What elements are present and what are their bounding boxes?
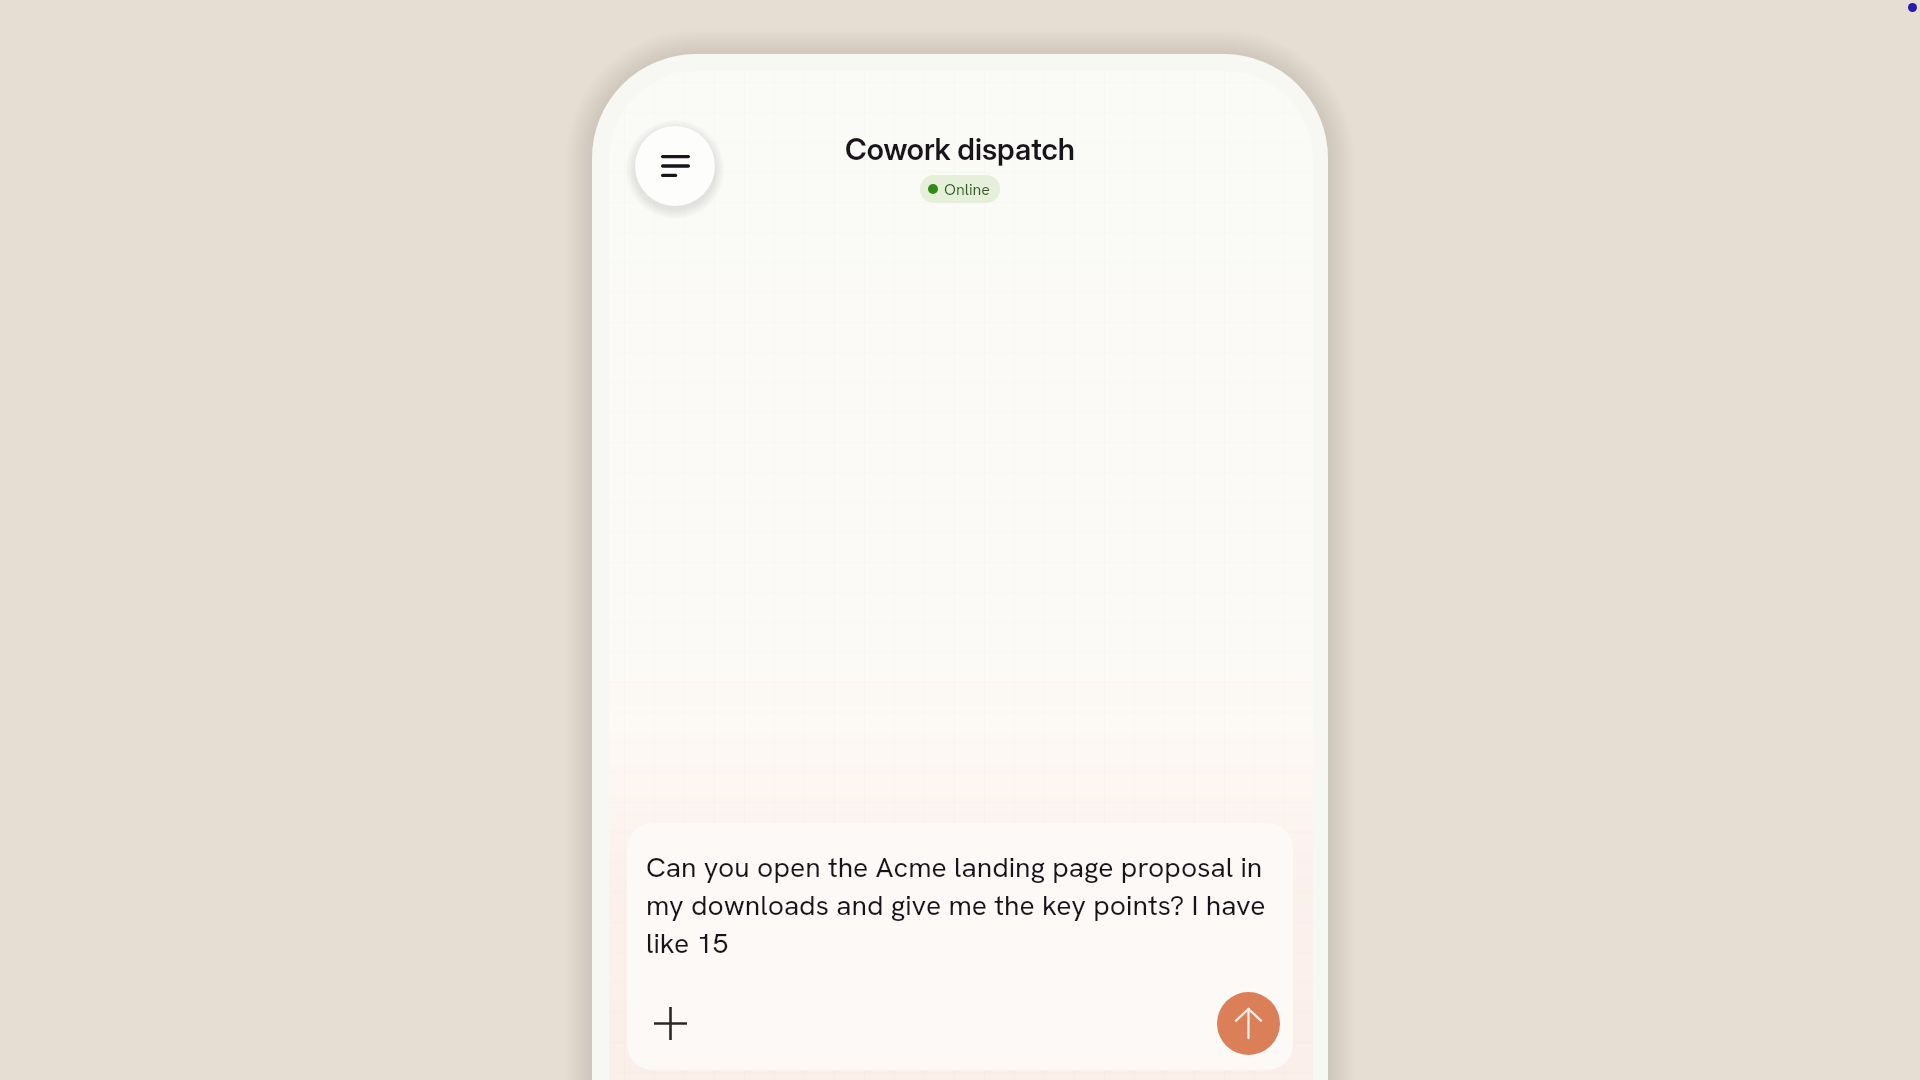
button[interactable]: Online bbox=[920, 175, 1000, 203]
button[interactable]: Send bbox=[1217, 992, 1280, 1055]
button[interactable]: Add attachment bbox=[642, 995, 698, 1051]
staticText: Can you open the Acme landing page propo… bbox=[646, 849, 1280, 962]
staticText: Cowork dispatch bbox=[845, 131, 1075, 167]
staticText: Online bbox=[944, 179, 990, 200]
button[interactable]: Menu bbox=[635, 126, 715, 206]
